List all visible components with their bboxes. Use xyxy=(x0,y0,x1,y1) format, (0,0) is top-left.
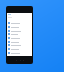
button[interactable] xyxy=(7,47,32,51)
button[interactable] xyxy=(7,21,32,25)
button[interactable] xyxy=(7,51,32,55)
button[interactable] xyxy=(7,32,32,36)
button[interactable] xyxy=(7,40,32,44)
button[interactable] xyxy=(7,25,32,29)
button[interactable] xyxy=(7,29,32,33)
button[interactable] xyxy=(7,43,32,47)
button[interactable] xyxy=(7,36,32,40)
